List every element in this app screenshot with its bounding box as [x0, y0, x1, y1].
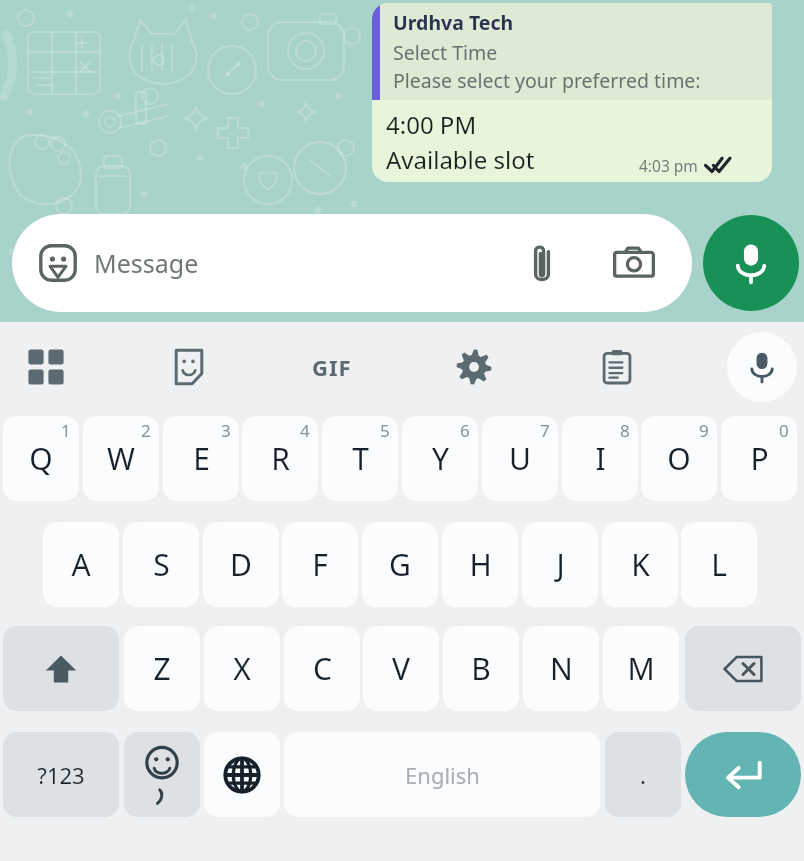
- button[interactable]: Urdhva Tech: [372, 3, 772, 182]
- button[interactable]: R: [242, 416, 318, 501]
- staticText: 9: [699, 419, 709, 442]
- staticText: R: [271, 438, 290, 479]
- button[interactable]: Shift: [3, 626, 119, 711]
- staticText: U: [509, 438, 531, 479]
- button[interactable]: P: [721, 416, 797, 501]
- button[interactable]: E: [163, 416, 239, 501]
- staticText: 4: [300, 419, 310, 442]
- staticText: L: [711, 544, 727, 585]
- button[interactable]: H: [442, 522, 518, 607]
- staticText: J: [556, 544, 565, 585]
- button[interactable]: .: [605, 732, 681, 817]
- staticText: ?123: [37, 760, 85, 790]
- button[interactable]: K: [602, 522, 678, 607]
- staticText: K: [631, 544, 650, 585]
- staticText: S: [153, 544, 170, 585]
- button[interactable]: Voice input: [727, 332, 797, 402]
- staticText: Y: [432, 438, 449, 479]
- staticText: 2: [141, 419, 151, 442]
- button[interactable]: Settings: [441, 334, 507, 400]
- button[interactable]: G: [362, 522, 438, 607]
- staticText: GIF: [312, 352, 352, 382]
- button[interactable]: Clipboard: [584, 334, 650, 400]
- staticText: P: [750, 438, 769, 479]
- button[interactable]: Enter: [685, 732, 801, 817]
- staticText: Please select your preferred time:: [393, 67, 701, 94]
- button[interactable]: Record voice message: [703, 215, 799, 311]
- staticText: O: [667, 438, 691, 479]
- button[interactable]: W: [83, 416, 159, 501]
- staticText: 4:03 pm: [639, 155, 698, 176]
- staticText: 6: [460, 419, 470, 442]
- staticText: T: [352, 438, 369, 479]
- button[interactable]: N: [523, 626, 599, 711]
- staticText: English: [405, 760, 480, 790]
- staticText: N: [550, 648, 573, 689]
- staticText: G: [389, 544, 411, 585]
- staticText: A: [71, 544, 91, 585]
- button[interactable]: S: [123, 522, 199, 607]
- staticText: H: [469, 544, 492, 585]
- button[interactable]: Q: [3, 416, 79, 501]
- staticText: Urdhva Tech: [393, 9, 514, 36]
- button[interactable]: O: [641, 416, 717, 501]
- staticText: F: [312, 544, 328, 585]
- button[interactable]: Stickers: [156, 334, 222, 400]
- button[interactable]: V: [363, 626, 439, 711]
- staticText: M: [627, 648, 655, 689]
- button[interactable]: T: [322, 416, 398, 501]
- button[interactable]: A: [43, 522, 119, 607]
- button[interactable]: Change language: [204, 732, 280, 817]
- button[interactable]: B: [443, 626, 519, 711]
- button[interactable]: M: [603, 626, 679, 711]
- staticText: E: [193, 438, 210, 479]
- button[interactable]: English: [284, 732, 600, 817]
- staticText: W: [107, 438, 135, 479]
- button[interactable]: J: [522, 522, 598, 607]
- button[interactable]: Apps: [13, 334, 79, 400]
- staticText: I: [595, 438, 606, 479]
- staticText: 4:00 PM: [386, 108, 477, 141]
- staticText: 1: [61, 419, 71, 442]
- staticText: V: [392, 648, 410, 689]
- button[interactable]: Camera: [606, 235, 662, 291]
- staticText: Available slot: [386, 143, 535, 176]
- button[interactable]: C: [284, 626, 360, 711]
- staticText: B: [471, 648, 491, 689]
- staticText: 5: [380, 419, 390, 442]
- button[interactable]: Attach: [514, 235, 570, 291]
- staticText: Message: [94, 246, 199, 280]
- staticText: 3: [221, 419, 231, 442]
- button[interactable]: Stickers: [34, 239, 82, 287]
- button[interactable]: Backspace: [685, 626, 801, 711]
- button[interactable]: GIF: [299, 334, 365, 400]
- button[interactable]: X: [204, 626, 280, 711]
- staticText: Z: [153, 648, 171, 689]
- button[interactable]: I: [562, 416, 638, 501]
- staticText: 8: [620, 419, 630, 442]
- button[interactable]: Emoji: [124, 732, 200, 817]
- staticText: 0: [779, 419, 789, 442]
- staticText: 7: [540, 419, 550, 442]
- staticText: .: [640, 760, 646, 790]
- staticText: X: [233, 648, 251, 689]
- button[interactable]: ?123: [3, 732, 119, 817]
- button[interactable]: D: [203, 522, 279, 607]
- button[interactable]: Y: [402, 416, 478, 501]
- button[interactable]: Z: [124, 626, 200, 711]
- staticText: Q: [29, 438, 53, 479]
- staticText: C: [313, 648, 332, 689]
- button[interactable]: L: [681, 522, 757, 607]
- button[interactable]: Stickers: [12, 214, 692, 312]
- button[interactable]: F: [282, 522, 358, 607]
- staticText: D: [230, 544, 252, 585]
- button[interactable]: U: [482, 416, 558, 501]
- staticText: Select Time: [393, 39, 498, 66]
